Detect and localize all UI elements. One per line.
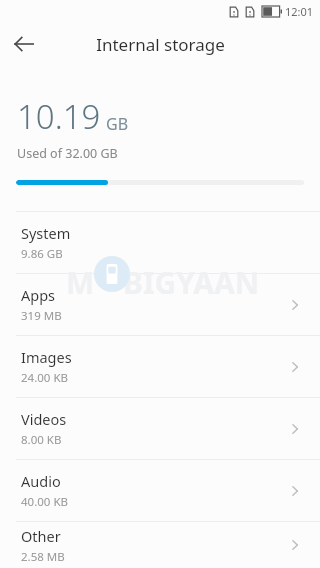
- button[interactable]: Apps: [0, 274, 320, 335]
- button[interactable]: Back: [0, 22, 48, 66]
- staticText: Audio: [21, 471, 61, 491]
- staticText: 24.00 KB: [21, 370, 68, 386]
- staticText: 12:01: [285, 4, 314, 19]
- button[interactable]: Audio: [0, 460, 320, 521]
- staticText: BIGYAAN: [123, 262, 260, 303]
- staticText: 10.19: [17, 94, 101, 139]
- staticText: 8.00 KB: [21, 432, 62, 448]
- staticText: Images: [21, 347, 72, 367]
- staticText: Videos: [21, 409, 67, 429]
- staticText: 9.86 GB: [21, 246, 63, 262]
- staticText: 319 MB: [21, 308, 62, 324]
- staticText: 2.58 MB: [21, 549, 65, 565]
- button[interactable]: System: [0, 212, 320, 273]
- staticText: Other: [21, 526, 61, 546]
- staticText: Apps: [21, 285, 56, 305]
- button[interactable]: Other: [0, 522, 320, 568]
- staticText: GB: [106, 113, 129, 135]
- staticText: 40.00 KB: [21, 494, 68, 510]
- staticText: System: [21, 223, 71, 243]
- staticText: Used of 32.00 GB: [17, 145, 118, 162]
- staticText: M: [66, 262, 95, 303]
- button[interactable]: Videos: [0, 398, 320, 459]
- button[interactable]: Images: [0, 336, 320, 397]
- staticText: Internal storage: [96, 33, 225, 56]
